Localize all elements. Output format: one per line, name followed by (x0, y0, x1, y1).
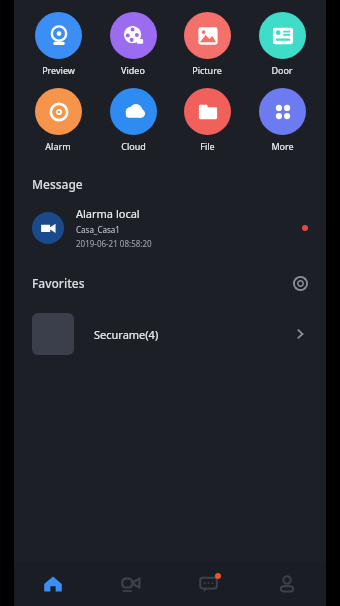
staticText: Message (32, 176, 83, 192)
button[interactable]: Door (246, 10, 318, 78)
staticText: Video (121, 64, 145, 76)
staticText: Alarma local (76, 206, 140, 221)
staticText: More (271, 140, 294, 152)
button[interactable]: Picture (171, 10, 243, 78)
staticText: Alarm (45, 140, 71, 152)
staticText: Door (271, 64, 293, 76)
staticText: 2019-06-21 08:58:20 (76, 238, 152, 249)
staticText: Picture (192, 64, 222, 76)
button[interactable]: Home (14, 562, 92, 606)
staticText: Cloud (121, 140, 146, 152)
button[interactable]: Devices (92, 562, 170, 606)
button[interactable]: Alarma local (14, 202, 326, 253)
staticText: Casa_Casa1 (76, 224, 120, 235)
button[interactable]: Cloud (97, 86, 169, 154)
button[interactable]: Favorites settings (288, 271, 312, 295)
staticText: Preview (42, 64, 75, 76)
button[interactable]: Messages (170, 562, 248, 606)
button[interactable]: Securame(4) (14, 309, 326, 359)
button[interactable]: File (171, 86, 243, 154)
button[interactable]: Preview (22, 10, 94, 78)
button[interactable]: Profile (248, 562, 326, 606)
button[interactable]: Video (97, 10, 169, 78)
staticText: File (200, 140, 215, 152)
staticText: Favorites (32, 275, 85, 291)
button[interactable]: More (246, 86, 318, 154)
button[interactable]: Alarm (22, 86, 94, 154)
staticText: Securame(4) (94, 327, 292, 342)
